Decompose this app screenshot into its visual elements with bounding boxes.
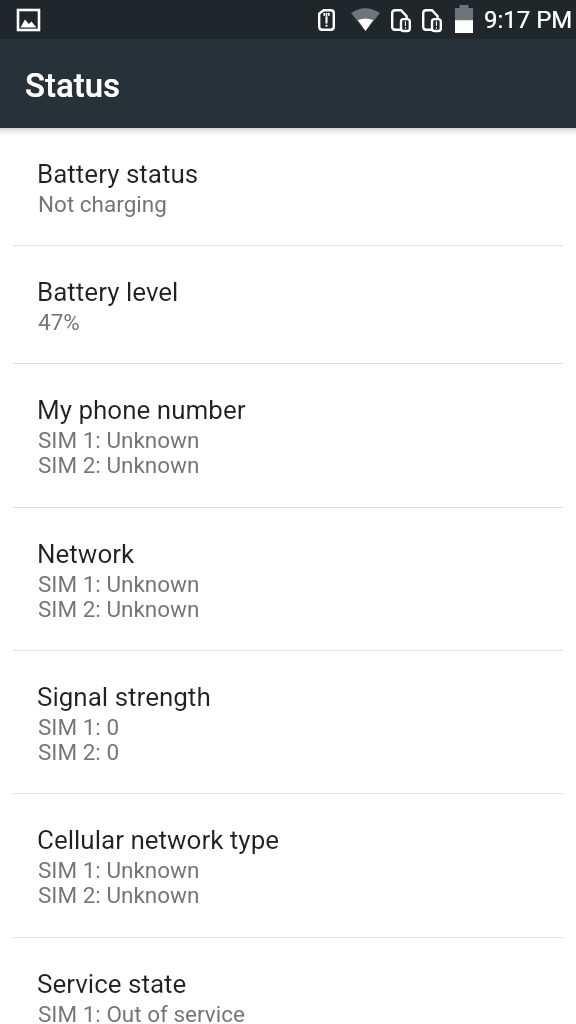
staticText: SIM 2: Unknown [38,596,200,622]
staticText: Battery status [37,159,199,189]
button[interactable]: Signal strength [0,651,576,794]
staticText: Not charging [38,191,167,217]
button[interactable]: My phone number [0,364,576,508]
staticText: Signal strength [37,682,211,712]
staticText: SIM 1: Out of service [38,1001,245,1024]
staticText: 47% [38,309,80,335]
staticText: 9:17 PM [484,6,573,34]
staticText: SIM 2: Unknown [38,882,200,908]
other: SIM 1 no service [391,9,411,31]
staticText: Network [37,539,135,569]
button[interactable]: Network [0,508,576,651]
button[interactable]: Battery status [0,128,576,246]
staticText: My phone number [37,395,246,425]
button[interactable]: Cellular network type [0,794,576,938]
staticText: SIM 1: 0 [38,714,120,740]
staticText: SIM 1: Unknown [38,427,200,453]
staticText: SIM 1: Unknown [38,571,200,597]
button[interactable]: Service state [0,938,576,1024]
other: Battery 47 percent [455,5,473,33]
staticText: Status [25,66,121,105]
other: SIM card alert [318,9,335,31]
staticText: SIM 1: Unknown [38,857,200,883]
staticText: Cellular network type [37,825,280,855]
button[interactable]: Battery level [0,246,576,364]
staticText: SIM 2: Unknown [38,452,200,478]
staticText: Battery level [37,277,179,307]
staticText: SIM 2: 0 [38,739,120,765]
staticText: Service state [37,969,187,999]
other: Screenshot [18,10,39,30]
other: SIM 2 no service [422,9,442,31]
other: Wi-Fi signal [351,6,380,31]
